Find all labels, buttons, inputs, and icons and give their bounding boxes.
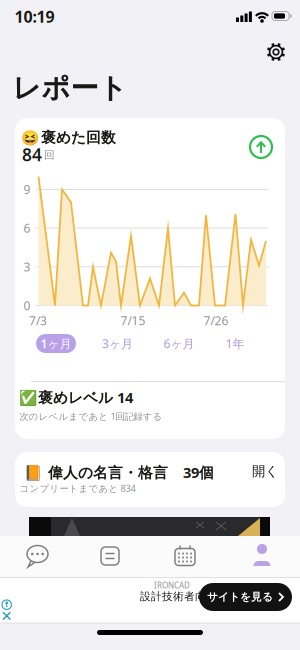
button[interactable]: 6ヶ月 [157,334,201,353]
staticText: 回 [44,148,55,162]
staticText: 0 [23,297,30,313]
staticText: 6 [23,220,30,236]
staticText: 褒めレベル 14 [38,387,133,407]
staticText: 次のレベルまであと 1回記録する [19,410,162,422]
staticText: IRONCAD [154,580,190,591]
button[interactable]: 📙 [0,0,270,55]
button[interactable]: サイトを見る [199,583,292,611]
button[interactable]: Chat [7,536,67,576]
staticText: 84 [22,143,42,166]
staticText: 7/3 [29,312,47,328]
staticText: 6ヶ月 [163,335,194,351]
staticText: 設計技術者向け3DCAD [140,589,253,603]
staticText: 📙 [24,465,42,482]
staticText: 9 [23,181,30,197]
staticText: 開く [252,463,279,479]
staticText: 1ヶ月 [40,335,71,351]
button[interactable]: Ad info [2,600,11,609]
button[interactable]: 1年 [217,334,253,353]
button[interactable]: Close ad [2,611,11,621]
staticText: 1年 [225,335,244,351]
staticText: 3 [23,259,30,275]
staticText: コンプリートまであと 834 [19,482,135,494]
button[interactable]: Settings [258,34,294,70]
staticText: 3ヶ月 [102,335,133,351]
button[interactable]: Calendar [155,536,215,576]
staticText: 7/26 [203,312,228,328]
staticText: 7/15 [120,312,145,328]
staticText: サイトを見る [207,590,273,603]
staticText: 10:19 [14,6,54,27]
button[interactable]: Profile [232,536,292,576]
staticText: ✅ [19,390,37,407]
staticText: レポート [12,71,127,105]
button[interactable]: 3ヶ月 [95,334,139,353]
button[interactable]: 1ヶ月 [36,334,76,353]
button[interactable]: Notes [80,536,140,576]
staticText: 😆 [20,130,38,147]
staticText: 褒めた回数 [41,128,116,146]
staticText: 偉人の名言・格言 39個 [48,462,214,482]
